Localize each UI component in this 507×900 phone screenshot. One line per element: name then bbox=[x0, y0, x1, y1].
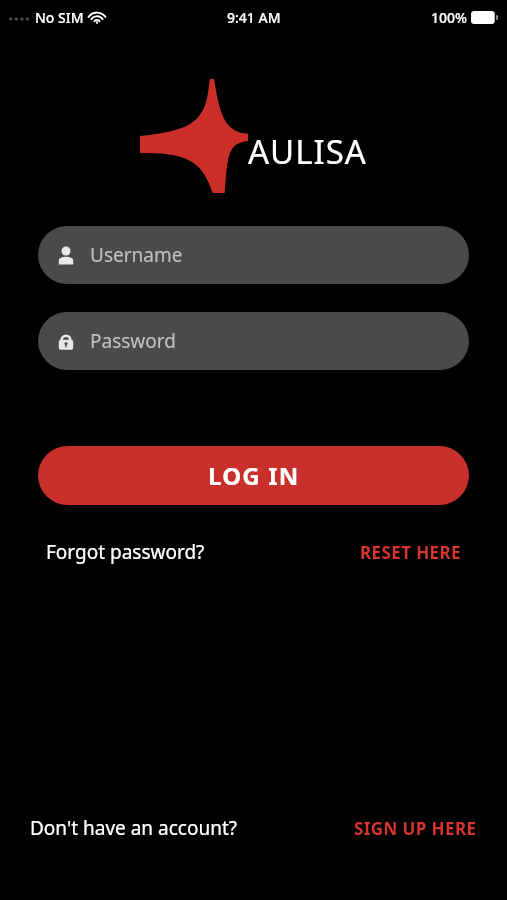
staticText: AULISA bbox=[248, 129, 367, 174]
staticText: 9:41 AM bbox=[227, 8, 281, 27]
other: Aulisa logo bbox=[140, 79, 248, 193]
button[interactable]: Username bbox=[38, 226, 469, 284]
button[interactable]: SIGN UP HERE bbox=[354, 811, 477, 846]
button[interactable]: Forgot password? bbox=[46, 533, 205, 571]
button[interactable]: LOG IN bbox=[38, 446, 469, 505]
button[interactable]: Don't have an account? bbox=[30, 809, 238, 847]
staticText: Don't have an account? bbox=[30, 815, 238, 841]
staticText: 100% bbox=[431, 8, 467, 27]
staticText: RESET HERE bbox=[360, 541, 461, 564]
staticText: SIGN UP HERE bbox=[354, 817, 477, 840]
staticText: No SIM bbox=[35, 8, 84, 27]
staticText: LOG IN bbox=[208, 459, 300, 492]
button[interactable]: RESET HERE bbox=[360, 535, 461, 570]
staticText: Username bbox=[90, 242, 183, 268]
staticText: Forgot password? bbox=[46, 539, 205, 565]
staticText: Password bbox=[90, 328, 176, 354]
button[interactable]: Password bbox=[38, 312, 469, 370]
